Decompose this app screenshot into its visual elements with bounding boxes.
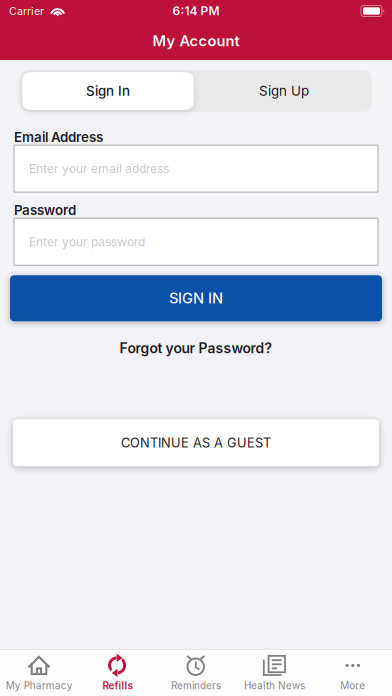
staticText: My Account [152, 32, 239, 50]
button[interactable]: Enter your email address [14, 145, 378, 192]
button[interactable]: My Pharmacy [0, 650, 78, 696]
staticText: Enter your password [29, 234, 145, 249]
staticText: My Pharmacy [6, 679, 73, 692]
staticText: CONTINUE AS A GUEST [121, 435, 271, 450]
staticText: Email Address [14, 129, 103, 145]
staticText: Health News [244, 679, 305, 692]
button[interactable]: SIGN IN [10, 275, 382, 321]
button[interactable]: CONTINUE AS A GUEST [13, 419, 379, 466]
button[interactable]: Refills [78, 650, 157, 696]
button[interactable]: Forgot your Password? [0, 335, 392, 361]
staticText: 6:14 PM [172, 4, 219, 18]
staticText: SIGN IN [169, 289, 223, 307]
staticText: Sign In [86, 83, 130, 99]
button[interactable]: Reminders [157, 650, 235, 696]
button[interactable]: Sign In [20, 70, 196, 112]
staticText: Refills [103, 679, 133, 692]
staticText: Carrier [9, 4, 44, 17]
button[interactable]: Sign Up [196, 70, 372, 112]
staticText: Password [14, 202, 76, 218]
staticText: More [340, 679, 365, 692]
staticText: Enter your email address [29, 161, 169, 176]
button[interactable]: Enter your password [14, 218, 378, 265]
staticText: Reminders [171, 679, 221, 692]
button[interactable]: More [314, 650, 392, 696]
staticText: Forgot your Password? [119, 340, 272, 357]
staticText: Sign Up [259, 83, 309, 99]
button[interactable]: Health News [235, 650, 314, 696]
